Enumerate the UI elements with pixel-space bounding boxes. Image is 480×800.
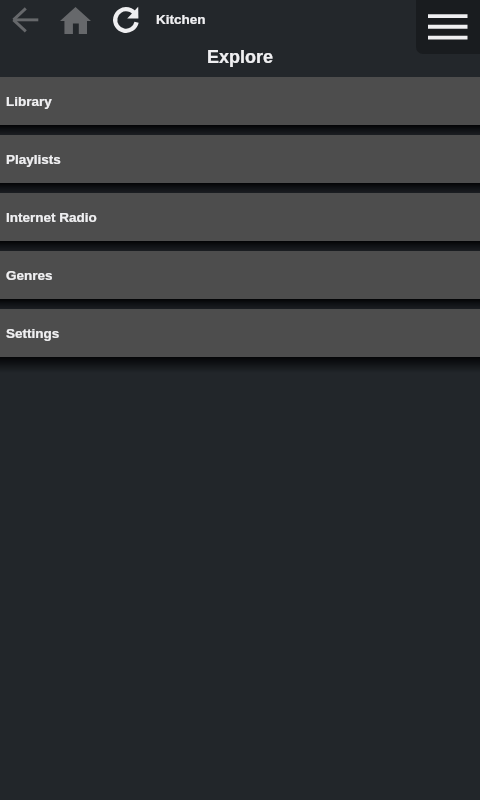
button[interactable]: Settings [0,309,480,357]
staticText: Playlists [6,152,61,167]
button[interactable]: Library [0,77,480,125]
staticText: Settings [6,326,60,341]
staticText: Library [6,94,52,109]
button[interactable]: Back [5,0,46,40]
button[interactable]: Internet Radio [0,193,480,241]
button[interactable]: Genres [0,251,480,299]
staticText: Kitchen [156,12,206,27]
button[interactable]: Home [55,0,95,40]
button[interactable]: Playlists [0,135,480,183]
button[interactable]: Refresh [105,0,145,40]
button[interactable]: Menu [416,0,480,54]
staticText: Explore [0,47,480,67]
staticText: Genres [6,268,53,283]
staticText: Internet Radio [6,210,97,225]
